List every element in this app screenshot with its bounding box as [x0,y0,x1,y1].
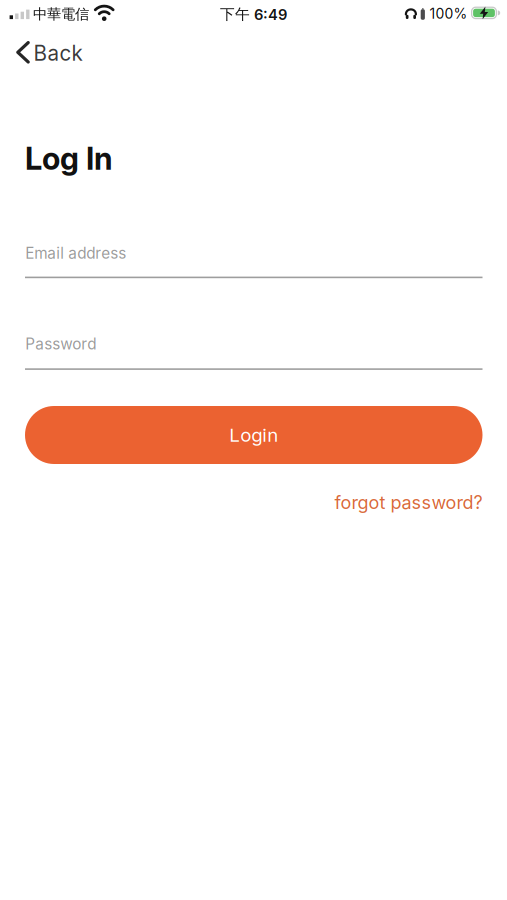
button[interactable]: Back [16,41,82,66]
staticText: 中華電信 [33,5,89,23]
staticText: forgot password? [334,492,482,513]
staticText: Email address [25,244,126,262]
staticText: Login [229,424,278,446]
staticText: Password [25,335,96,353]
button[interactable]: Login [25,406,482,464]
staticText: 下午 6:49 [220,5,287,24]
staticText: 100% [429,5,467,22]
staticText: Log In [25,140,113,177]
button[interactable]: forgot password? [334,492,507,513]
staticText: Back [33,41,82,66]
